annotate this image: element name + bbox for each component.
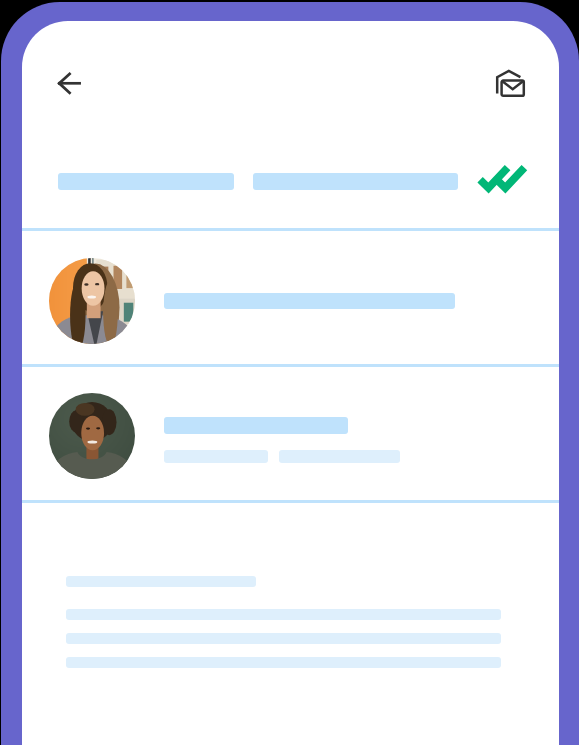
button[interactable]: Mark as unread (486, 61, 530, 105)
button[interactable]: Photo of sender (49, 258, 135, 344)
button[interactable] (22, 503, 559, 745)
button[interactable]: Read receipt (22, 125, 559, 228)
button[interactable]: Read receipt (470, 157, 528, 197)
button[interactable]: Photo of sender (22, 367, 559, 500)
button[interactable]: Photo of sender (22, 231, 559, 364)
button[interactable]: Photo of sender (49, 393, 135, 479)
button[interactable]: Back (47, 61, 91, 105)
